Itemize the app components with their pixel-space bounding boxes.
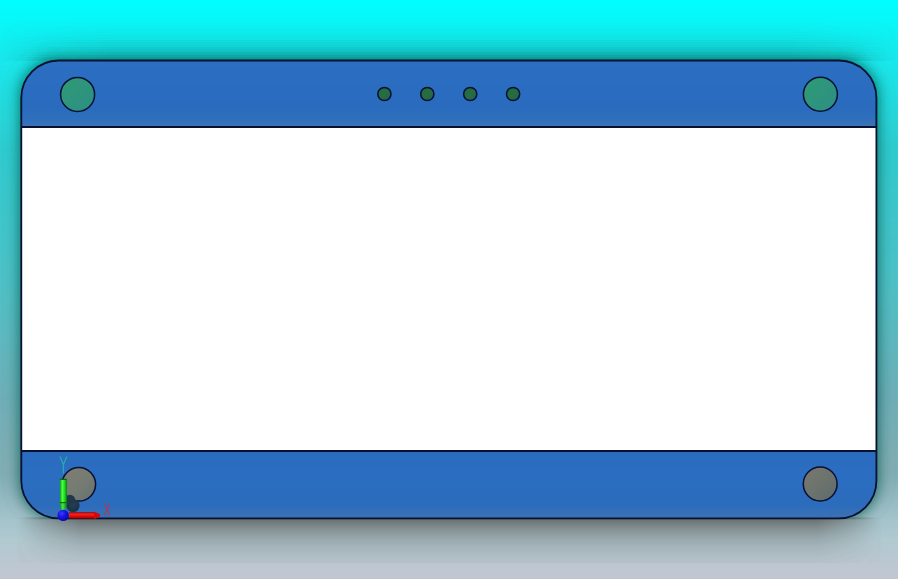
button[interactable]: CAD model viewport [0,0,898,579]
